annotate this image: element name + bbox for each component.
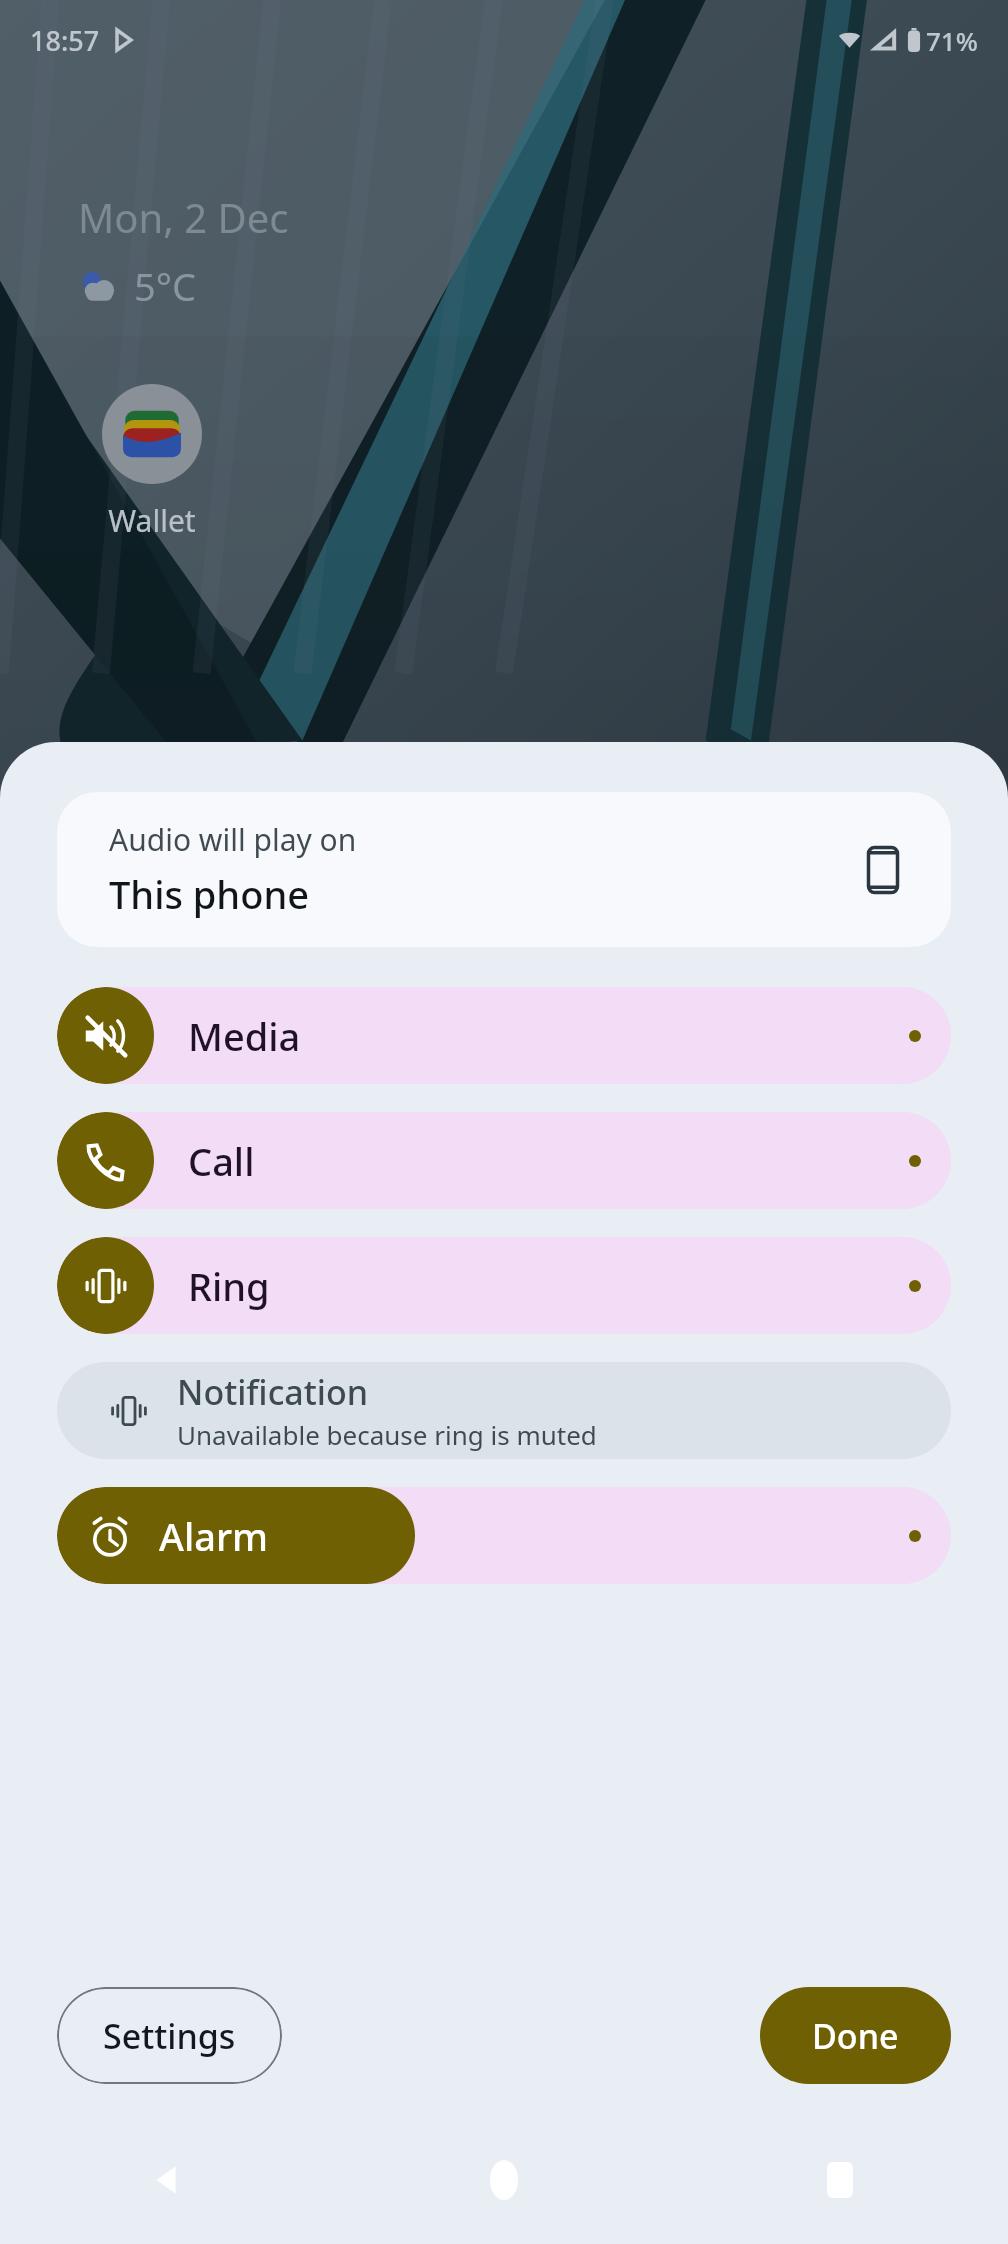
button[interactable]: Alarm (57, 1487, 951, 1584)
staticText: Ring (188, 1260, 270, 1312)
staticText: Call (188, 1135, 255, 1187)
staticText: Alarm (159, 1510, 268, 1562)
staticText: Media (188, 1010, 301, 1062)
staticText: Wallet (108, 500, 196, 541)
staticText: This phone (109, 868, 310, 920)
button[interactable]: Audio will play on (57, 792, 951, 947)
button[interactable]: Home (336, 2140, 672, 2220)
staticText: 71% (926, 23, 978, 58)
button[interactable]: Media (57, 987, 951, 1084)
button[interactable]: Call (57, 1112, 951, 1209)
button[interactable]: Notification (57, 1362, 951, 1459)
button[interactable]: Recents (672, 2140, 1008, 2220)
staticText: Settings (103, 2013, 236, 2059)
button[interactable]: Wallet (78, 384, 226, 541)
staticText: Done (812, 2013, 899, 2059)
staticText: Audio will play on (109, 819, 357, 860)
button[interactable]: Ring (57, 1237, 951, 1334)
staticText: 5°C (134, 260, 197, 312)
button[interactable]: Done (760, 1987, 951, 2084)
staticText: 18:57 (30, 22, 100, 59)
staticText: Notification (177, 1369, 369, 1415)
staticText: Mon, 2 Dec (78, 190, 289, 244)
staticText: Unavailable because ring is muted (177, 1417, 597, 1452)
button[interactable]: Settings (57, 1987, 282, 2084)
